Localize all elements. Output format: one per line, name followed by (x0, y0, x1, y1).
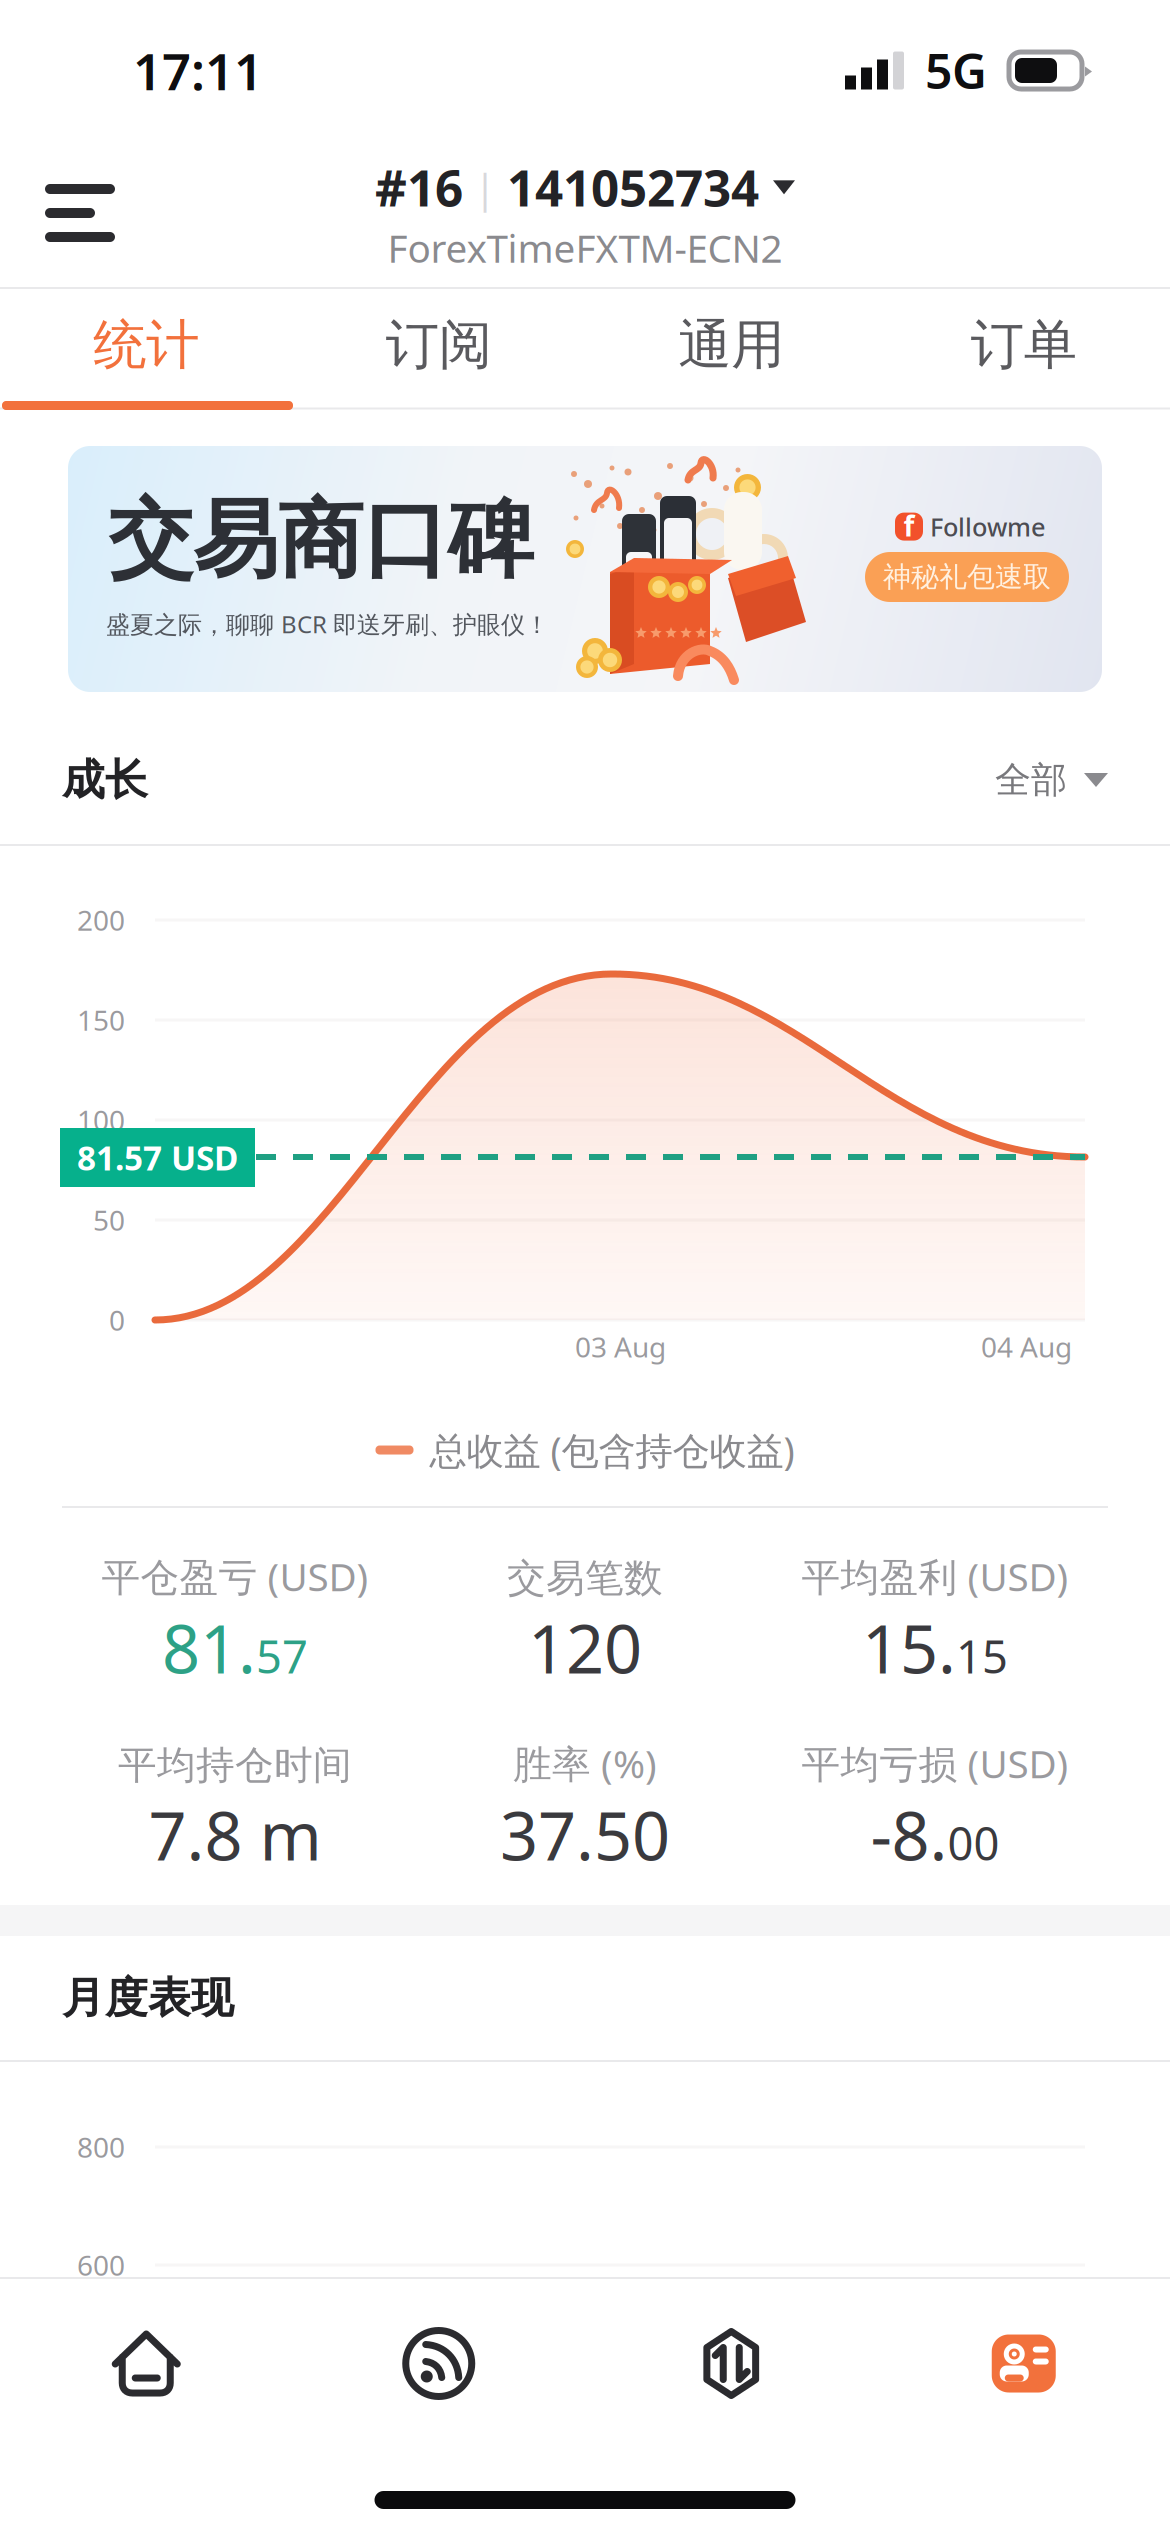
staticText: Followme (930, 510, 1046, 543)
staticText: 150 (77, 1001, 125, 1039)
button[interactable]: Profile (877, 2279, 1170, 2420)
staticText: 17:11 (133, 37, 263, 104)
button[interactable]: 全部 (995, 758, 1108, 802)
button[interactable]: 订阅 (292, 289, 585, 401)
staticText: 5G (925, 39, 987, 102)
staticText: 胜率 (%) (513, 1738, 657, 1789)
staticText: 全部 (995, 758, 1067, 802)
staticText: 订单 (971, 312, 1077, 378)
staticText: 平均持仓时间 (118, 1741, 352, 1789)
staticText: 141052734 (507, 155, 759, 220)
staticText: 00 (947, 1813, 999, 1873)
staticText: #16 (375, 155, 463, 220)
staticText: 总收益 (包含持仓收益) (429, 1425, 794, 1475)
staticText: 平均盈利 (USD) (801, 1551, 1068, 1602)
staticText: 月度表现 (62, 1972, 234, 2024)
staticText: 37.50 (500, 1790, 670, 1879)
staticText: 神秘礼包速取 (883, 560, 1051, 594)
staticText: ForexTimeFXTM-ECN2 (387, 222, 782, 273)
staticText: 200 (77, 901, 125, 939)
staticText: 15 (956, 1626, 1008, 1686)
staticText: 800 (77, 2128, 125, 2166)
staticText: 通用 (678, 312, 784, 378)
button[interactable]: 交易商口碑 (68, 446, 1102, 692)
staticText: 平仓盈亏 (USD) (101, 1551, 368, 1602)
staticText: 成长 (62, 754, 148, 806)
button[interactable]: 订单 (877, 289, 1170, 401)
staticText: 0 (109, 1301, 125, 1339)
staticText: 交易商口碑 (108, 488, 533, 592)
staticText: 600 (77, 2246, 125, 2284)
staticText: 交易笔数 (507, 1554, 663, 1602)
staticText: 100 (77, 1101, 125, 1139)
button[interactable]: 统计 (0, 289, 292, 401)
staticText: 03 Aug (575, 1328, 666, 1365)
button[interactable]: Home (0, 2279, 292, 2420)
staticText: 盛夏之际，聊聊 BCR 即送牙刷、护眼仪！ (106, 608, 549, 640)
staticText: 120 (528, 1603, 642, 1692)
staticText: -8. (870, 1790, 947, 1879)
staticText: f (903, 507, 914, 544)
button[interactable]: Discover (292, 2279, 585, 2420)
staticText: 7.8 m (148, 1790, 321, 1879)
staticText: | (474, 161, 496, 214)
button[interactable]: 通用 (585, 289, 877, 401)
button[interactable]: Trade (585, 2279, 877, 2420)
staticText: 81. (162, 1603, 256, 1692)
staticText: 统计 (93, 312, 199, 378)
staticText: 50 (93, 1201, 125, 1239)
staticText: 订阅 (386, 312, 492, 378)
staticText: 81.57 USD (77, 1135, 238, 1180)
staticText: 15. (862, 1603, 956, 1692)
button[interactable]: Menu (0, 151, 142, 277)
staticText: 57 (256, 1626, 308, 1686)
staticText: 04 Aug (981, 1328, 1072, 1365)
staticText: 平均亏损 (USD) (801, 1738, 1068, 1789)
